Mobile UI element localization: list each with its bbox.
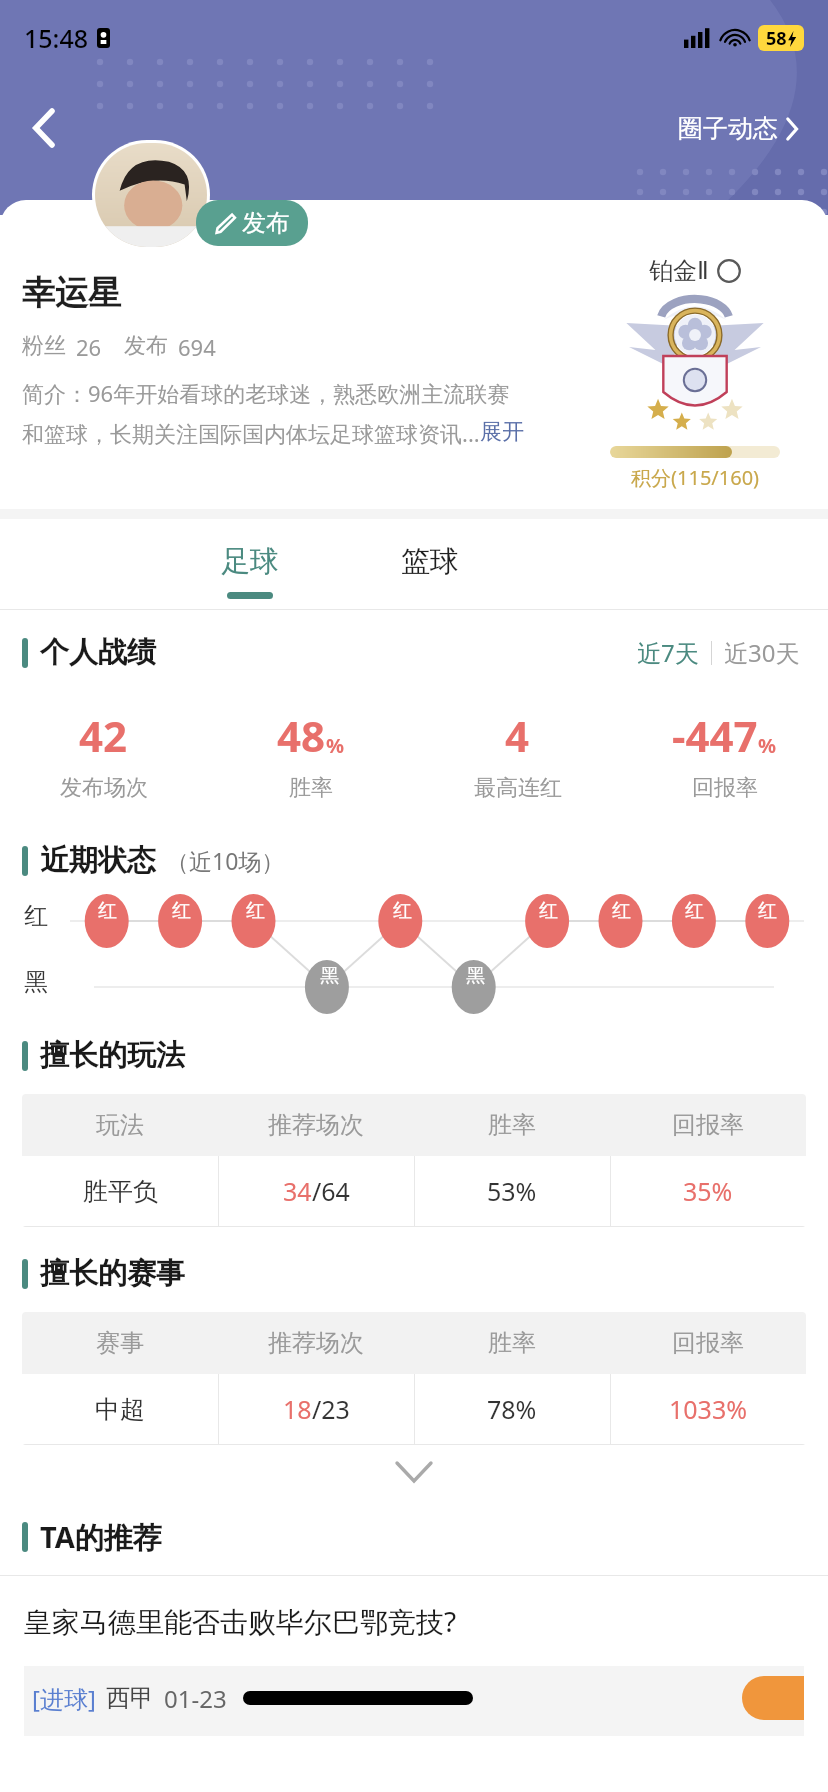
button[interactable]: 近7天 bbox=[633, 632, 703, 673]
staticText: 红 bbox=[24, 901, 48, 931]
staticText: 红 bbox=[393, 899, 412, 923]
staticText: 发布 bbox=[124, 332, 168, 360]
staticText: [进球] bbox=[32, 1682, 96, 1715]
staticText: TA的推荐 bbox=[40, 1517, 162, 1557]
staticText: 34 bbox=[283, 1174, 312, 1208]
staticText: 铂金Ⅱ bbox=[649, 256, 709, 286]
staticText: 红 bbox=[685, 899, 704, 923]
staticText: % bbox=[758, 732, 777, 759]
button[interactable]: 篮球 bbox=[340, 519, 520, 609]
staticText: 粉丝 bbox=[22, 332, 66, 360]
staticText: 35% bbox=[683, 1174, 733, 1208]
staticText: 01-23 bbox=[164, 1682, 227, 1715]
staticText: 简介：96年开始看球的老球迷，熟悉欧洲主流联赛 bbox=[22, 378, 510, 408]
staticText: 玩法 bbox=[96, 1110, 144, 1140]
staticText: 发布 bbox=[242, 208, 290, 238]
staticText: 积分(115/160) bbox=[631, 464, 760, 491]
staticText: 近期状态 bbox=[40, 842, 156, 879]
button[interactable]: 近30天 bbox=[720, 632, 804, 673]
staticText: 发布场次 bbox=[60, 774, 148, 802]
staticText: 皇家马德里能否击败毕尔巴鄂竞技? bbox=[24, 1602, 457, 1640]
staticText: 红 bbox=[758, 899, 777, 923]
staticText: 展开 bbox=[480, 418, 524, 446]
staticText: % bbox=[326, 732, 345, 759]
staticText: 胜率 bbox=[289, 774, 333, 802]
staticText: 78% bbox=[487, 1392, 537, 1426]
staticText: 中超 bbox=[95, 1394, 145, 1425]
staticText: 黑 bbox=[320, 964, 339, 988]
button[interactable]: 皇家马德里能否击败毕尔巴鄂竞技? bbox=[0, 1602, 828, 1736]
staticText: 篮球 bbox=[401, 543, 459, 580]
staticText: 圈子动态 bbox=[678, 113, 778, 144]
staticText: 胜率 bbox=[488, 1110, 536, 1140]
staticText: 红 bbox=[539, 899, 558, 923]
button[interactable]: 发布 bbox=[196, 200, 308, 246]
staticText: 26 bbox=[76, 332, 102, 362]
staticText: 赛事 bbox=[96, 1328, 144, 1358]
staticText: 推荐场次 bbox=[268, 1328, 364, 1358]
staticText: 幸运星 bbox=[22, 272, 121, 314]
staticText: 黑 bbox=[24, 967, 48, 997]
button[interactable]: 圈子动态 bbox=[672, 107, 804, 150]
staticText: 红 bbox=[612, 899, 631, 923]
staticText: 擅长的玩法 bbox=[40, 1037, 185, 1074]
staticText: 18 bbox=[283, 1392, 312, 1426]
staticText: 和篮球，长期关注国际国内体坛足球篮球资讯... bbox=[22, 418, 480, 448]
staticText: 推荐场次 bbox=[268, 1110, 364, 1140]
staticText: 15:48 bbox=[24, 21, 89, 55]
staticText: 个人战绩 bbox=[40, 634, 156, 671]
staticText: 红 bbox=[246, 899, 265, 923]
button[interactable]: 足球 bbox=[160, 519, 340, 609]
staticText: 胜率 bbox=[488, 1328, 536, 1358]
staticText: 42 bbox=[79, 707, 128, 764]
staticText: 58 bbox=[766, 26, 787, 51]
staticText: 4 bbox=[505, 707, 530, 764]
staticText: 红 bbox=[172, 899, 191, 923]
staticText: 西甲 bbox=[106, 1683, 154, 1713]
button[interactable]: 铂金Ⅱ bbox=[649, 256, 741, 286]
staticText: /64 bbox=[312, 1174, 350, 1208]
button[interactable]: Expand bbox=[0, 1445, 828, 1499]
staticText: 回报率 bbox=[672, 1328, 744, 1358]
staticText: 近7天 bbox=[637, 636, 699, 669]
staticText: 1033% bbox=[669, 1392, 747, 1426]
staticText: （近10场） bbox=[166, 845, 285, 876]
staticText: 足球 bbox=[221, 543, 279, 580]
staticText: 53% bbox=[487, 1174, 537, 1208]
staticText: /23 bbox=[312, 1392, 350, 1426]
staticText: 红 bbox=[98, 899, 117, 923]
staticText: 48 bbox=[277, 707, 326, 764]
staticText: 694 bbox=[178, 332, 216, 362]
staticText: 胜平负 bbox=[83, 1176, 158, 1207]
staticText: -447 bbox=[672, 707, 758, 764]
button[interactable] bbox=[95, 143, 207, 247]
staticText: 回报率 bbox=[672, 1110, 744, 1140]
button[interactable]: Back bbox=[22, 105, 68, 151]
staticText: 回报率 bbox=[692, 774, 758, 802]
staticText: 最高连红 bbox=[474, 774, 562, 802]
staticText: 擅长的赛事 bbox=[40, 1255, 185, 1292]
staticText: 黑 bbox=[466, 964, 485, 988]
staticText: 近30天 bbox=[724, 636, 800, 669]
